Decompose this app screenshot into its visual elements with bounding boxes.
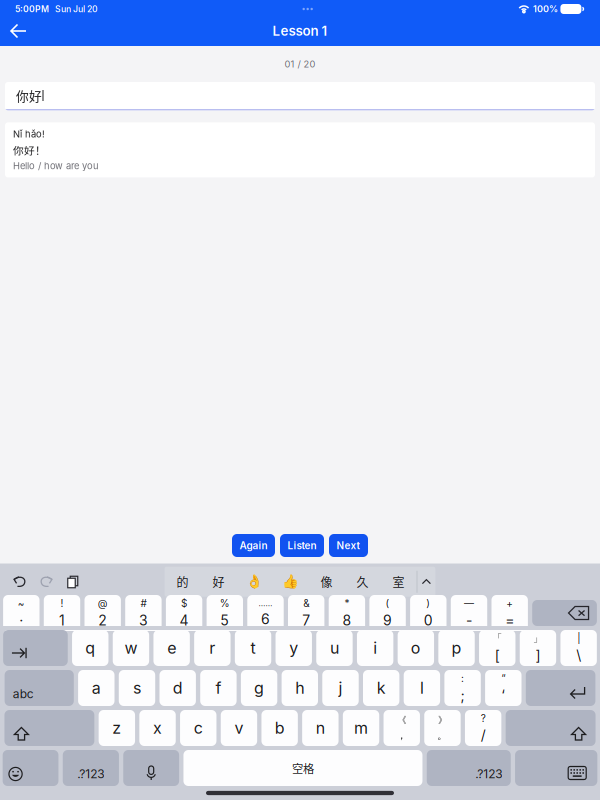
button[interactable]: s [119, 670, 155, 706]
button[interactable]: p [438, 630, 475, 666]
button[interactable]: 久 [345, 567, 381, 597]
button[interactable]: q [72, 630, 108, 666]
staticText: ~ [18, 597, 25, 609]
button[interactable]: 好 [201, 567, 237, 597]
button[interactable]: z [99, 710, 135, 746]
button[interactable]: abc [5, 670, 74, 706]
button[interactable]: 的 [165, 567, 201, 597]
button[interactable]: Shift [506, 710, 595, 746]
button[interactable]: · [3, 595, 39, 631]
button[interactable]: w [113, 630, 149, 666]
staticText: 👌 [246, 574, 263, 589]
button[interactable]: v [221, 710, 257, 746]
staticText: r [209, 638, 215, 658]
button[interactable]: More candidates [417, 567, 435, 597]
button[interactable]: m [343, 710, 379, 746]
button[interactable]: 1 [44, 595, 80, 631]
staticText: l [420, 678, 424, 698]
button[interactable]: e [153, 630, 190, 666]
button[interactable]: Dictate [123, 750, 179, 786]
staticText: 像 [321, 573, 333, 590]
button[interactable]: c [180, 710, 216, 746]
staticText: * [344, 597, 349, 609]
staticText: b [275, 718, 285, 738]
button[interactable]: u [316, 630, 353, 666]
button[interactable]: 5 [207, 595, 243, 631]
staticText: e [167, 638, 176, 658]
button[interactable]: ] [520, 630, 556, 666]
button[interactable]: t [235, 630, 271, 666]
button[interactable]: r [194, 630, 231, 666]
button[interactable]: / [465, 710, 501, 746]
button[interactable]: Redo [33, 570, 59, 594]
button[interactable]: h [282, 670, 318, 706]
button[interactable]: o [398, 630, 434, 666]
button[interactable]: [ [479, 630, 515, 666]
staticText: # [140, 597, 146, 609]
button[interactable]: Delete [532, 600, 597, 626]
button[interactable]: x [139, 710, 176, 746]
button[interactable]: j [322, 670, 359, 706]
staticText: a [92, 678, 101, 698]
button[interactable]: Back [0, 18, 37, 44]
button[interactable]: 3 [125, 595, 162, 631]
button[interactable]: Tab [3, 630, 68, 666]
button[interactable]: \ [560, 630, 597, 666]
button[interactable]: 8 [329, 595, 365, 631]
button[interactable]: 4 [166, 595, 202, 631]
staticText: p [452, 638, 462, 658]
staticText: 3 [139, 612, 148, 629]
staticText: 6 [261, 611, 270, 627]
button[interactable]: Shift [4, 710, 94, 746]
staticText: d [173, 678, 183, 698]
button[interactable]: i [357, 630, 393, 666]
staticText: 」 [533, 632, 543, 645]
button[interactable]: f [200, 670, 237, 706]
button[interactable]: ， [384, 710, 420, 746]
button[interactable]: Emoji [3, 750, 58, 786]
button[interactable]: a [78, 670, 114, 706]
button[interactable]: 0 [410, 595, 446, 631]
staticText: v [234, 718, 243, 738]
button[interactable]: 7 [288, 595, 324, 631]
staticText: 👍 [282, 574, 299, 589]
button[interactable]: Dismiss keyboard [515, 750, 597, 786]
button[interactable]: n [302, 710, 339, 746]
staticText: \ [576, 647, 581, 664]
button[interactable]: d [159, 670, 196, 706]
button[interactable]: 。 [424, 710, 461, 746]
button[interactable]: .?123 [63, 750, 119, 786]
button[interactable]: Next [329, 534, 368, 557]
button[interactable]: Return [526, 670, 595, 706]
staticText: x [153, 718, 162, 738]
staticText: Next [336, 539, 360, 552]
button[interactable]: y [276, 630, 312, 666]
button[interactable]: g [241, 670, 277, 706]
button[interactable]: b [261, 710, 298, 746]
button[interactable]: Space [183, 750, 422, 786]
staticText: ] [535, 647, 540, 664]
staticText: : [461, 672, 464, 684]
button[interactable]: 室 [381, 567, 417, 597]
button[interactable]: .?123 [427, 750, 511, 786]
button[interactable]: ; [444, 670, 481, 706]
button[interactable]: l [404, 670, 440, 706]
button[interactable]: ‘ [485, 670, 521, 706]
button[interactable]: = [491, 595, 528, 631]
button[interactable]: 2 [84, 595, 121, 631]
button[interactable]: k [363, 670, 399, 706]
button[interactable]: 像 [309, 567, 345, 597]
button[interactable]: Paste [59, 570, 86, 594]
button[interactable]: OK hand emoji [237, 567, 273, 597]
button[interactable]: Again [232, 534, 275, 557]
button[interactable]: Undo [6, 570, 33, 594]
staticText: 久 [357, 573, 369, 590]
button[interactable]: 6 [247, 595, 284, 631]
button[interactable]: Thumbs up emoji [273, 567, 309, 597]
button[interactable]: 9 [369, 595, 406, 631]
staticText: 9 [383, 612, 392, 629]
staticText: 「 [492, 632, 502, 645]
button[interactable]: - [451, 595, 487, 631]
staticText: z [112, 718, 121, 738]
button[interactable]: Listen [280, 534, 324, 557]
